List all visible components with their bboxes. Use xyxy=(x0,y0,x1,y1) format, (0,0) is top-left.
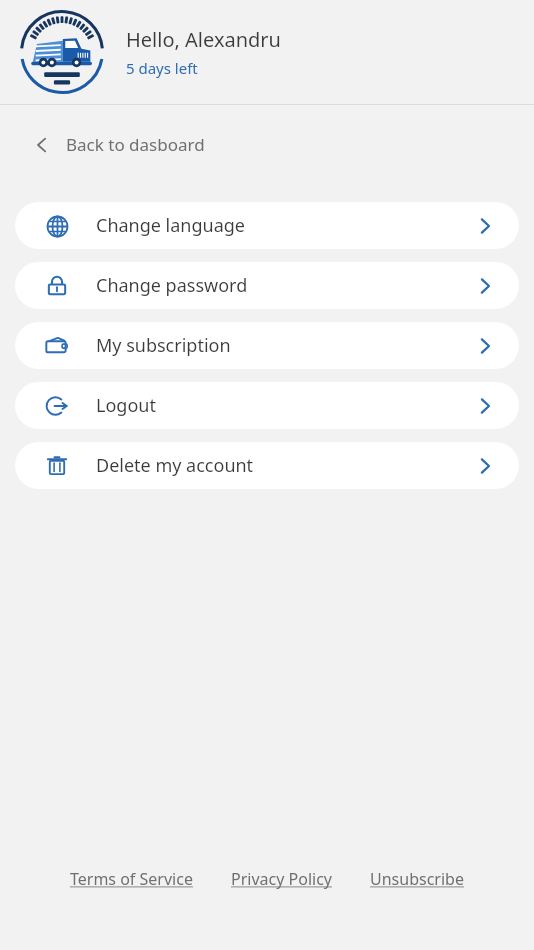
staticText: 5 days left xyxy=(126,58,198,78)
button[interactable]: Terms of Service xyxy=(68,864,195,894)
button[interactable]: Logout xyxy=(15,382,519,429)
staticText: Back to dasboard xyxy=(66,133,205,156)
button[interactable]: Unsubscribe xyxy=(368,864,466,894)
staticText: Unsubscribe xyxy=(370,868,464,890)
staticText: Change language xyxy=(96,213,246,238)
staticText: Terms of Service xyxy=(70,868,193,890)
staticText: My subscription xyxy=(96,333,231,358)
other: Truck Restrictions logo xyxy=(16,6,108,98)
staticText: Change password xyxy=(96,273,248,298)
button[interactable]: My subscription xyxy=(15,322,519,369)
button[interactable]: Delete my account xyxy=(15,442,519,489)
staticText: Delete my account xyxy=(96,453,254,478)
button[interactable]: Privacy Policy xyxy=(229,864,334,894)
staticText: Privacy Policy xyxy=(231,868,332,890)
button[interactable]: Change language xyxy=(15,202,519,249)
staticText: Logout xyxy=(96,393,156,418)
button[interactable]: Back to dasboard xyxy=(24,127,213,162)
button[interactable]: Change password xyxy=(15,262,519,309)
staticText: Hello, Alexandru xyxy=(126,26,281,53)
